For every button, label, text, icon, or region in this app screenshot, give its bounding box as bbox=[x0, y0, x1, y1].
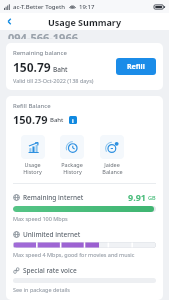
staticText: Package bbox=[61, 161, 83, 168]
staticText: Remaining balance bbox=[13, 49, 67, 57]
staticText: Max speed 100 Mbps bbox=[13, 215, 68, 222]
staticText: Usage bbox=[24, 161, 41, 168]
staticText: Baht bbox=[53, 65, 68, 74]
staticText: 150.79 bbox=[13, 112, 48, 127]
staticText: Balance bbox=[102, 168, 123, 175]
button[interactable]: Jaidee Balance bbox=[92, 135, 132, 175]
staticText: Max speed 4 Mbps, good for movies and mu… bbox=[13, 251, 135, 258]
staticText: Unlimited internet bbox=[23, 230, 81, 239]
staticText: History bbox=[23, 168, 42, 175]
staticText: i bbox=[72, 117, 74, 124]
staticText: 094-566-1966 bbox=[8, 30, 78, 39]
staticText: Baht bbox=[50, 116, 64, 124]
staticText: 150.79 bbox=[13, 59, 51, 75]
staticText: Refill Balance bbox=[13, 102, 51, 110]
staticText: Refill bbox=[127, 62, 145, 72]
button[interactable]: See in package details bbox=[13, 286, 70, 293]
staticText: ac-T.Better Togeth bbox=[13, 3, 66, 11]
button[interactable]: Refill bbox=[116, 58, 156, 75]
staticText: Special rate voice bbox=[23, 266, 77, 275]
staticText: Remaining internet bbox=[23, 193, 84, 202]
button[interactable]: Remaining balance bbox=[6, 43, 163, 90]
staticText: GB bbox=[148, 194, 156, 201]
button[interactable]: Back bbox=[0, 13, 18, 30]
button[interactable]: Package History bbox=[52, 135, 92, 175]
staticText: 19:17 bbox=[79, 3, 95, 11]
staticText: Usage Summary bbox=[48, 16, 122, 28]
staticText: History bbox=[63, 168, 82, 175]
button[interactable]: Info bbox=[69, 116, 77, 124]
button[interactable]: Usage History bbox=[13, 135, 52, 175]
staticText: Valid till 23-Oct-2022 (138 days) bbox=[13, 77, 94, 84]
staticText: Jaidee bbox=[104, 161, 120, 168]
staticText: 9.91 bbox=[128, 191, 146, 203]
